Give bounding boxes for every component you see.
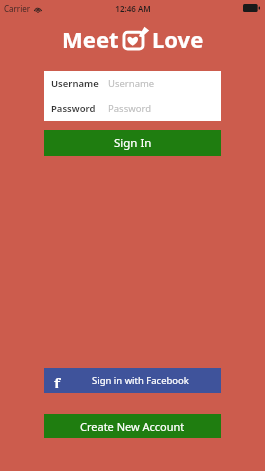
other: Meet Love logo: [122, 25, 150, 53]
staticText: Love: [152, 24, 204, 54]
staticText: Password: [51, 102, 108, 115]
button[interactable]: f: [44, 368, 221, 393]
button[interactable]: Password: [44, 96, 221, 121]
staticText: Username: [51, 77, 108, 90]
staticText: Username: [108, 77, 155, 90]
staticText: 12:46 AM: [115, 3, 151, 14]
staticText: Password: [108, 102, 151, 115]
staticText: f: [54, 373, 61, 388]
staticText: Sign in with Facebook: [92, 374, 189, 387]
staticText: Meet: [62, 24, 119, 54]
button[interactable]: Create New Account: [44, 414, 221, 438]
staticText: Create New Account: [80, 419, 185, 434]
button[interactable]: Username: [44, 71, 221, 96]
staticText: Carrier: [4, 3, 31, 14]
staticText: Sign In: [114, 135, 152, 151]
button[interactable]: Sign In: [44, 130, 221, 156]
